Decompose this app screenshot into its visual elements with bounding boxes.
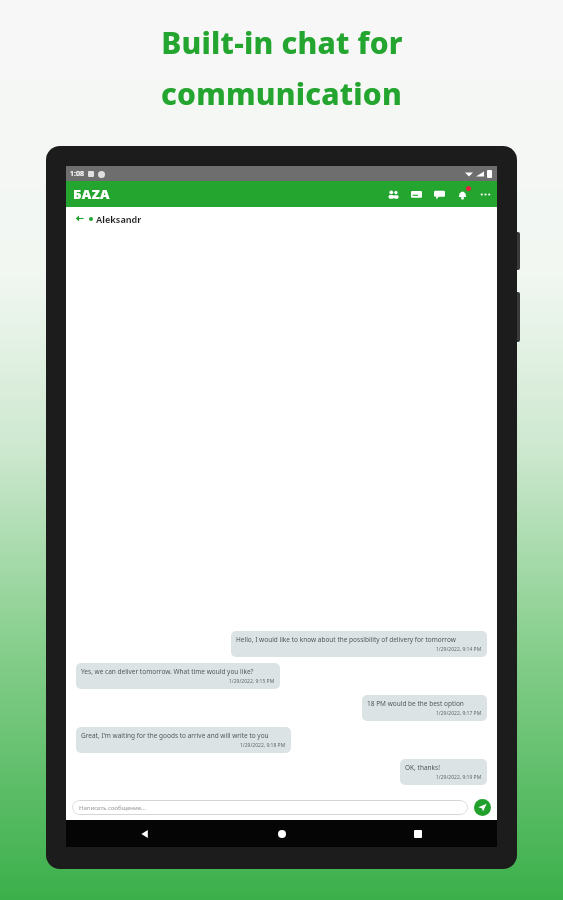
staticText: 1:08 <box>70 169 84 179</box>
staticText: 1/29/2022, 9:19 PM <box>436 774 482 781</box>
staticText: 1/29/2022, 9:18 PM <box>240 742 286 749</box>
button[interactable]: Notifications <box>455 187 469 201</box>
button[interactable]: More options <box>478 187 492 201</box>
button[interactable]: 18 PM would be the best option <box>362 695 487 721</box>
staticText: communication <box>161 73 402 114</box>
button[interactable]: Chat <box>432 187 446 201</box>
staticText: Написать сообщение... <box>79 804 146 812</box>
button[interactable]: Hello, I would like to know about the po… <box>231 631 487 657</box>
staticText: Hello, I would like to know about the po… <box>236 635 456 644</box>
button[interactable]: Send <box>474 799 491 816</box>
staticText: 1/29/2022, 9:17 PM <box>436 710 482 717</box>
button[interactable]: Home <box>273 825 291 843</box>
button[interactable]: Написать сообщение... <box>72 800 468 815</box>
staticText: Aleksandr <box>96 213 142 225</box>
button[interactable]: Recents <box>409 825 427 843</box>
button[interactable]: OK, thanks! <box>400 759 487 785</box>
button[interactable]: People <box>386 187 400 201</box>
button[interactable]: Back <box>73 212 86 225</box>
button[interactable]: Great, I'm waiting for the goods to arri… <box>76 727 291 753</box>
button[interactable]: Back <box>136 825 154 843</box>
staticText: БАZA <box>73 185 110 203</box>
staticText: Great, I'm waiting for the goods to arri… <box>81 731 269 740</box>
staticText: Yes, we can deliver tomorrow. What time … <box>81 667 254 676</box>
staticText: OK, thanks! <box>405 763 440 772</box>
staticText: Built-in chat for <box>161 22 403 63</box>
staticText: 1/29/2022, 9:15 PM <box>229 678 275 685</box>
staticText: 18 PM would be the best option <box>367 699 464 708</box>
staticText: 1/29/2022, 9:14 PM <box>436 646 482 653</box>
button[interactable]: Messages <box>409 187 423 201</box>
button[interactable]: Yes, we can deliver tomorrow. What time … <box>76 663 280 689</box>
